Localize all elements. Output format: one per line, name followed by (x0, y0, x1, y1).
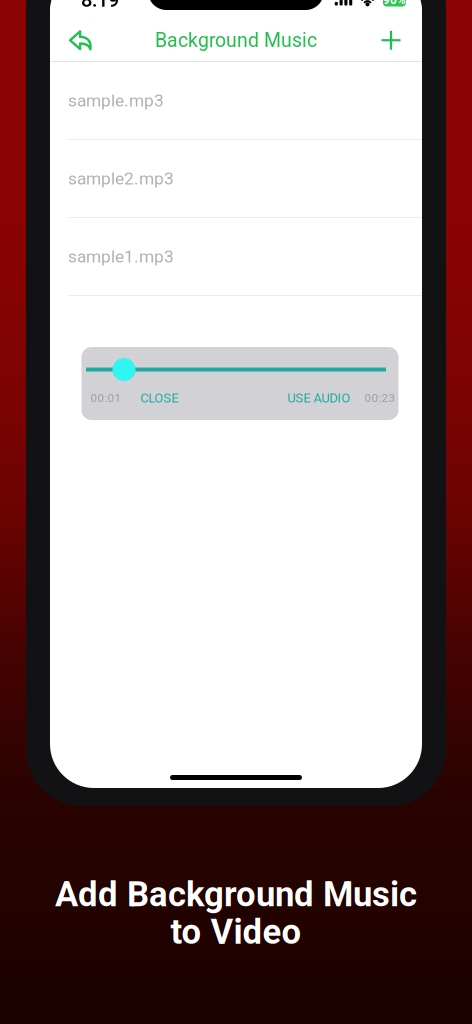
button[interactable]: Add music (365, 19, 417, 61)
staticText: Add Background Music (55, 874, 417, 915)
staticText: 96% (383, 0, 406, 7)
staticText: 00:01 (90, 391, 121, 405)
button[interactable]: USE AUDIO (287, 390, 350, 406)
button[interactable]: CLOSE (140, 390, 178, 405)
button[interactable]: Back (55, 19, 107, 61)
staticText: 00:23 (364, 391, 395, 405)
button[interactable]: sample1.mp3 (50, 218, 422, 296)
staticText: 8:19 (81, 0, 119, 12)
button[interactable]: sample2.mp3 (50, 140, 422, 218)
staticText: to Video (170, 912, 301, 952)
staticText: sample.mp3 (68, 90, 164, 111)
staticText: USE AUDIO (287, 390, 350, 406)
staticText: Background Music (155, 29, 317, 52)
staticText: CLOSE (140, 390, 178, 405)
button[interactable]: sample.mp3 (50, 62, 422, 140)
staticText: sample2.mp3 (68, 168, 174, 189)
staticText: sample1.mp3 (68, 246, 174, 267)
